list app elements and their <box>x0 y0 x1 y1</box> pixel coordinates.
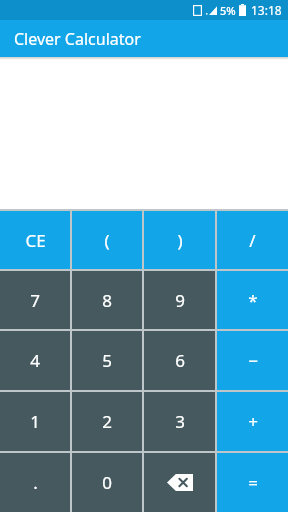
staticText: 5% <box>220 3 236 18</box>
button[interactable]: 9 <box>144 271 215 329</box>
staticText: = <box>248 471 258 494</box>
button[interactable]: − <box>217 331 288 390</box>
button[interactable]: 1 <box>0 392 70 451</box>
button[interactable]: * <box>217 271 288 329</box>
staticText: 4 <box>30 349 40 372</box>
button[interactable]: 3 <box>144 392 215 451</box>
staticText: Clever Calculator <box>14 28 141 50</box>
staticText: 8 <box>102 289 112 312</box>
staticText: ( <box>104 229 110 252</box>
button[interactable]: 2 <box>72 392 142 451</box>
staticText: * <box>248 289 258 312</box>
button[interactable]: / <box>217 211 288 269</box>
staticText: / <box>249 229 256 252</box>
button[interactable]: + <box>217 392 288 451</box>
button[interactable]: 7 <box>0 271 70 329</box>
button[interactable]: 8 <box>72 271 142 329</box>
button[interactable]: 4 <box>0 331 70 390</box>
button[interactable]: . <box>0 453 70 512</box>
staticText: 6 <box>175 349 185 372</box>
staticText: 9 <box>175 289 185 312</box>
button[interactable]: Backspace <box>144 453 215 512</box>
button[interactable]: ( <box>72 211 142 269</box>
staticText: − <box>248 349 258 372</box>
staticText: 1 <box>30 410 40 433</box>
staticText: + <box>248 410 258 433</box>
button[interactable]: 6 <box>144 331 215 390</box>
button[interactable]: ) <box>144 211 215 269</box>
button[interactable]: 0 <box>72 453 142 512</box>
staticText: 7 <box>30 289 40 312</box>
staticText: 13:18 <box>251 2 282 18</box>
staticText: 0 <box>102 471 112 494</box>
staticText: 2 <box>102 410 112 433</box>
staticText: CE <box>25 229 46 252</box>
staticText: ) <box>177 229 183 252</box>
staticText: 5 <box>102 349 112 372</box>
button[interactable]: = <box>217 453 288 512</box>
button[interactable]: 5 <box>72 331 142 390</box>
staticText: . <box>33 471 38 494</box>
staticText: 3 <box>175 410 185 433</box>
button[interactable]: CE <box>0 211 70 269</box>
